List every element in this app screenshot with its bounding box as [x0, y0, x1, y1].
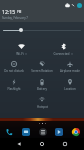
staticText: Do not disturb	[4, 69, 24, 73]
button[interactable]: Play Store	[54, 127, 63, 136]
staticText: Sunday, February 7	[2, 16, 29, 20]
button[interactable]: Back	[13, 138, 25, 150]
button[interactable]: Hotspot	[28, 94, 56, 112]
button[interactable]: Screen Rotation	[28, 58, 56, 76]
staticText: Flashlight	[7, 87, 21, 91]
button[interactable]: Wi-Fi	[0, 40, 42, 58]
button[interactable]: Chrome	[71, 127, 80, 136]
button[interactable]: Recents	[59, 138, 71, 150]
button[interactable]: Account	[77, 3, 82, 8]
staticText: 12:15	[2, 8, 16, 15]
staticText: Battery	[37, 87, 47, 91]
button[interactable]: Location	[56, 76, 84, 94]
staticText: Location	[64, 87, 76, 91]
button[interactable]: Do not disturb	[0, 58, 28, 76]
button[interactable]: Battery	[28, 76, 56, 94]
staticText: Hotspot	[37, 105, 48, 109]
button[interactable]: All apps	[38, 127, 47, 136]
button[interactable]: Home	[36, 138, 48, 150]
button[interactable]: Messages	[21, 127, 30, 136]
button[interactable]: Brightness	[19, 28, 23, 32]
staticText: Connected	[53, 52, 70, 56]
button[interactable]: Connected	[42, 40, 84, 58]
staticText: Wi-Fi	[16, 52, 24, 56]
button[interactable]: Phone	[4, 127, 13, 136]
staticText: Airplane mode	[60, 69, 80, 73]
staticText: PM	[17, 10, 22, 14]
staticText: Screen Rotation	[31, 69, 53, 73]
button[interactable]: Airplane mode	[56, 58, 84, 76]
button[interactable]: Flashlight	[0, 76, 28, 94]
